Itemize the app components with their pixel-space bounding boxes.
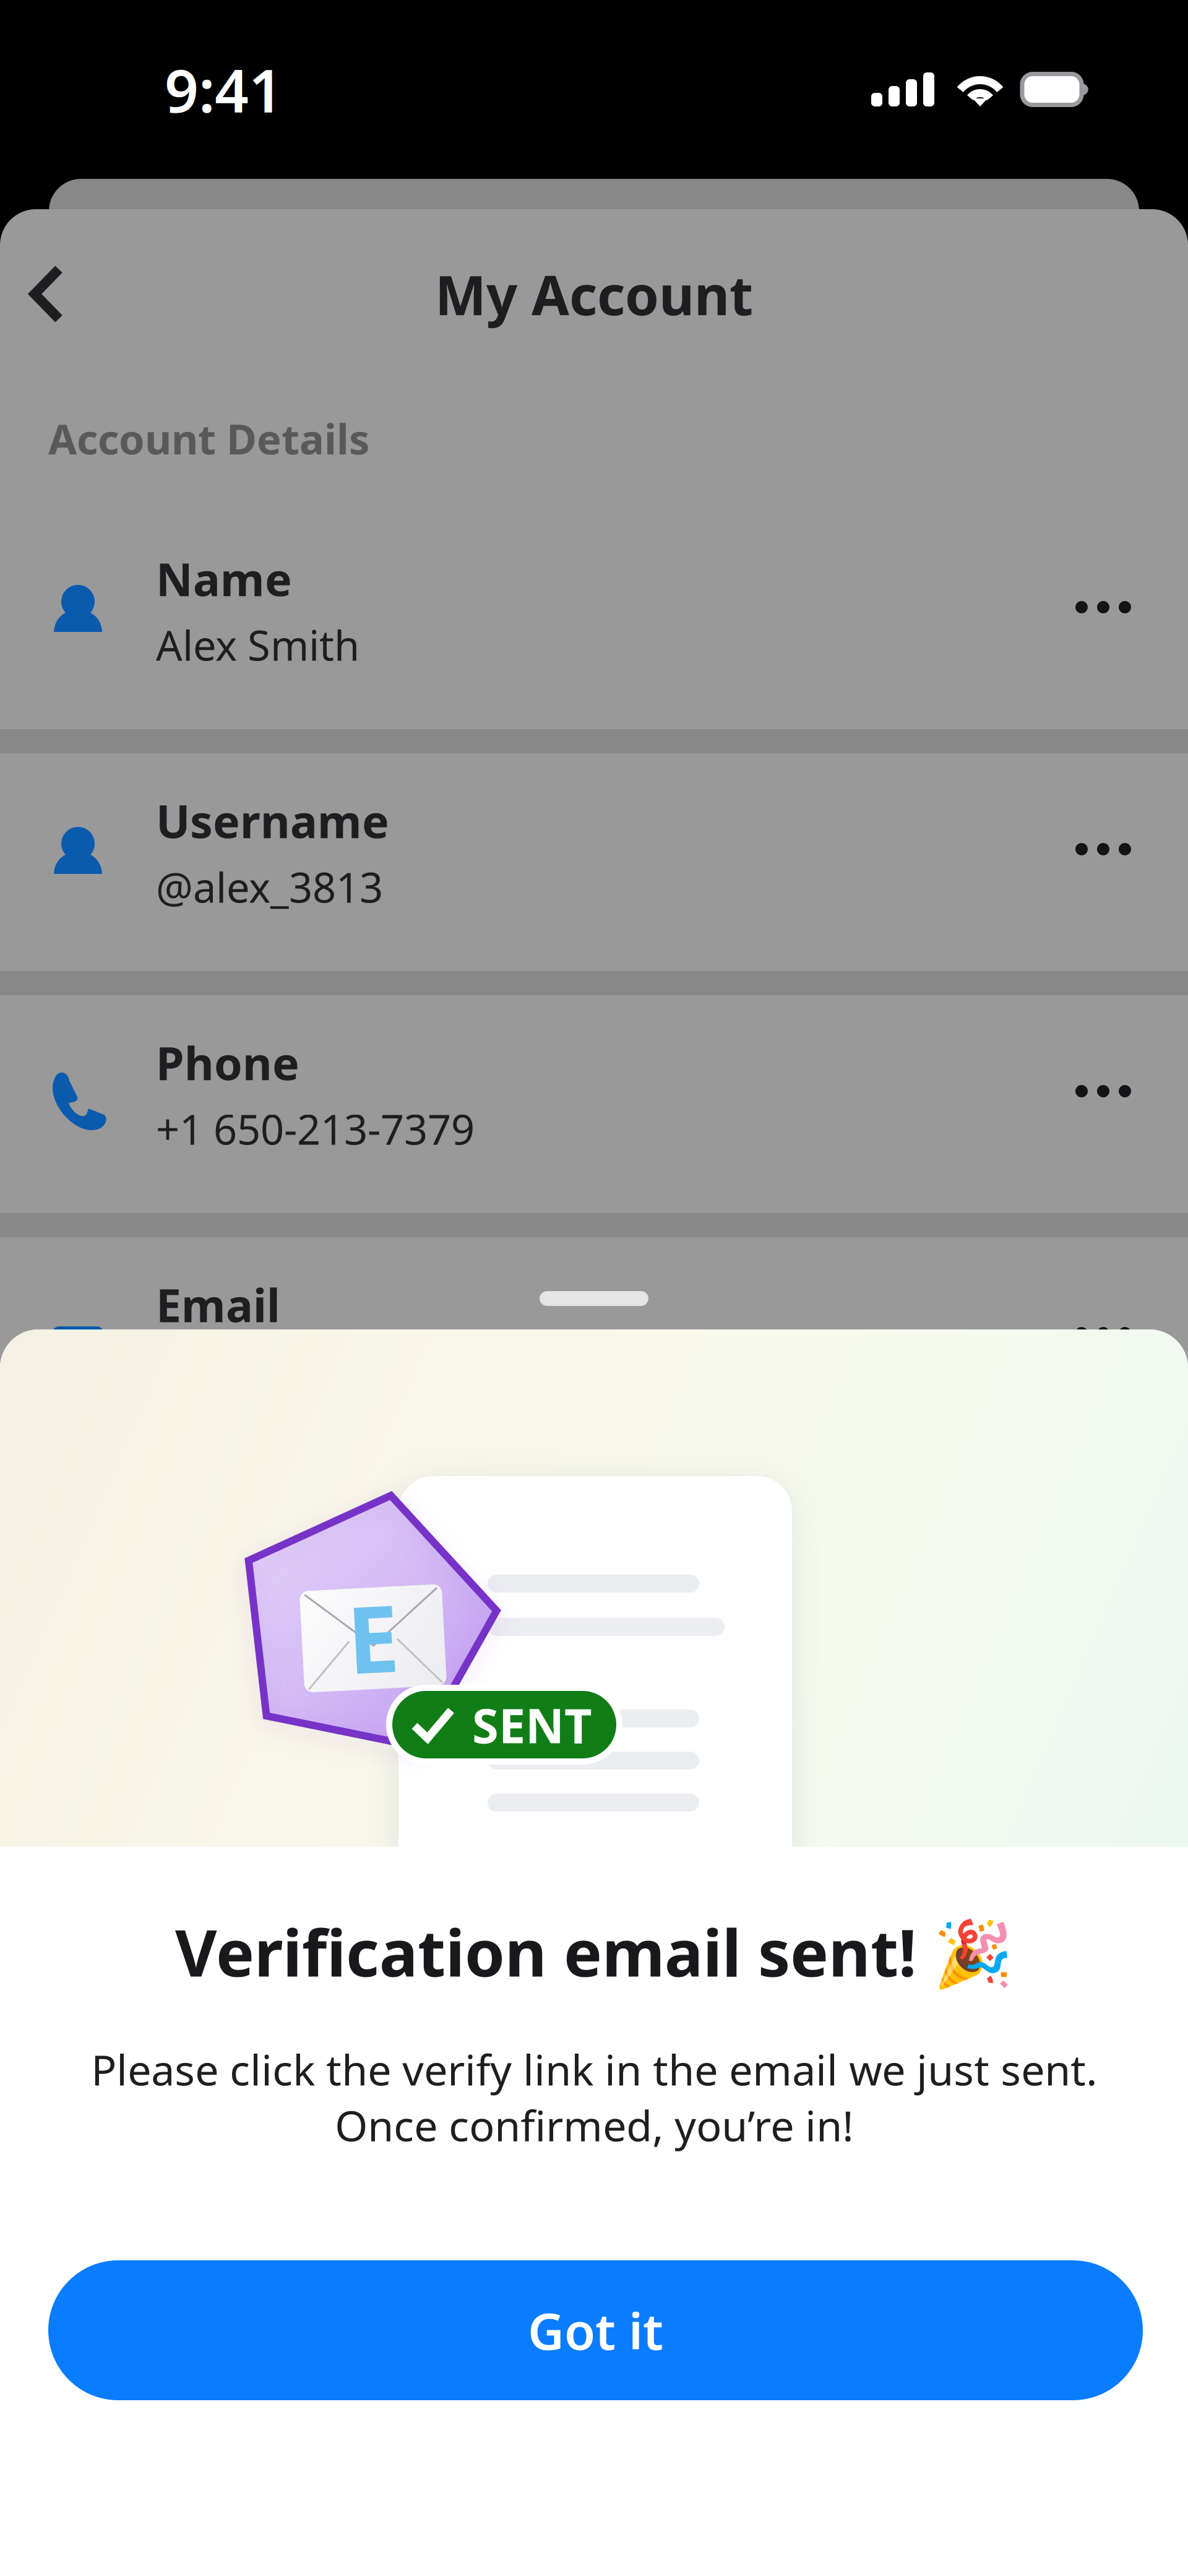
staticText: Name [156, 548, 292, 609]
staticText: Username [156, 790, 389, 851]
staticText: E [347, 1576, 399, 1698]
button[interactable]: Username [0, 753, 1188, 971]
staticText: Email [156, 1274, 280, 1335]
staticText: Account Details [48, 411, 369, 466]
staticText: 9:41 [165, 50, 283, 129]
staticText: Got it [528, 2297, 663, 2364]
button[interactable]: Name [0, 511, 1188, 729]
button[interactable]: Back [9, 245, 84, 343]
staticText: SENT [472, 1693, 592, 1756]
staticText: Please click the verify link in the emai… [91, 2041, 1097, 2153]
staticText: Alex Smith [156, 617, 359, 672]
staticText: Verification email sent! 🎉 [175, 1909, 1013, 1994]
staticText: My Account [435, 258, 753, 330]
staticText: @alex_3813 [156, 859, 383, 914]
button[interactable]: Email [0, 1237, 1188, 1455]
button[interactable]: Got it [48, 2260, 1143, 2400]
staticText: +1 650-213-7379 [156, 1101, 475, 1156]
staticText: Phone [156, 1032, 299, 1093]
button[interactable]: Phone [0, 995, 1188, 1213]
